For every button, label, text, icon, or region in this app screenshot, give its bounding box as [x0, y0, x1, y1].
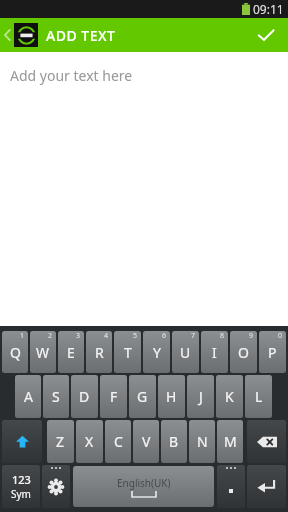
staticText: F: [110, 387, 118, 406]
button[interactable]: Q: [2, 331, 28, 373]
button[interactable]: X: [76, 420, 103, 463]
staticText: 4: [104, 331, 109, 341]
staticText: English(UK): [117, 476, 171, 490]
staticText: H: [166, 387, 177, 406]
staticText: 1: [20, 331, 25, 341]
staticText: Q: [10, 343, 21, 362]
staticText: 0: [278, 331, 283, 341]
staticText: 7: [191, 331, 196, 341]
staticText: 6: [162, 331, 167, 341]
button[interactable]: I: [201, 331, 228, 373]
staticText: V: [142, 432, 151, 451]
staticText: W: [36, 343, 50, 362]
button[interactable]: R: [86, 331, 112, 373]
staticText: O: [238, 343, 249, 362]
button[interactable]: W: [30, 331, 56, 373]
staticText: E: [67, 343, 75, 362]
button[interactable]: G: [129, 375, 156, 418]
button[interactable]: K: [216, 375, 243, 418]
staticText: J: [199, 387, 203, 406]
button[interactable]: V: [133, 420, 159, 463]
staticText: Add your text here: [10, 66, 133, 85]
button[interactable]: N: [189, 420, 215, 463]
button[interactable]: D: [71, 375, 98, 418]
button[interactable]: L: [245, 375, 272, 418]
staticText: P: [268, 343, 277, 362]
button[interactable]: Symbols: [2, 465, 40, 508]
staticText: S: [52, 387, 60, 406]
button[interactable]: O: [230, 331, 257, 373]
button[interactable]: Add your text here: [0, 52, 288, 326]
staticText: 8: [220, 331, 225, 341]
staticText: T: [124, 343, 132, 362]
button[interactable]: M: [217, 420, 243, 463]
button[interactable]: J: [187, 375, 214, 418]
button[interactable]: F: [100, 375, 127, 418]
staticText: N: [197, 432, 208, 451]
button[interactable]: Shift: [2, 420, 42, 463]
staticText: R: [95, 343, 104, 362]
staticText: D: [79, 387, 90, 406]
button[interactable]: Backspace: [247, 420, 286, 463]
staticText: B: [169, 432, 179, 451]
button[interactable]: Space: [73, 466, 214, 507]
button[interactable]: Y: [143, 331, 170, 373]
button[interactable]: P: [259, 331, 286, 373]
staticText: Sym: [11, 487, 31, 501]
staticText: 9: [249, 331, 254, 341]
button[interactable]: Settings: [42, 465, 70, 508]
staticText: 2: [48, 331, 53, 341]
staticText: U: [180, 343, 191, 362]
staticText: K: [225, 387, 234, 406]
button[interactable]: Navigate up: [0, 18, 116, 52]
staticText: 123: [12, 472, 31, 487]
staticText: A: [24, 387, 33, 406]
button[interactable]: A: [15, 375, 41, 418]
button[interactable]: E: [58, 331, 84, 373]
staticText: I: [212, 343, 217, 362]
staticText: ADD TEXT: [46, 26, 116, 45]
staticText: 5: [133, 331, 138, 341]
button[interactable]: C: [105, 420, 131, 463]
button[interactable]: Done: [244, 18, 288, 52]
button[interactable]: U: [172, 331, 199, 373]
button[interactable]: Period: [217, 465, 245, 508]
staticText: 09:11: [253, 1, 284, 17]
staticText: L: [255, 387, 263, 406]
staticText: Y: [153, 343, 161, 362]
button[interactable]: T: [114, 331, 141, 373]
staticText: G: [137, 387, 148, 406]
button[interactable]: Enter: [247, 465, 286, 508]
staticText: M: [224, 432, 237, 451]
button[interactable]: S: [43, 375, 69, 418]
staticText: C: [114, 432, 123, 451]
staticText: 3: [76, 331, 81, 341]
button[interactable]: H: [158, 375, 185, 418]
button[interactable]: Z: [47, 420, 74, 463]
staticText: X: [85, 432, 94, 451]
staticText: Z: [56, 432, 65, 451]
button[interactable]: B: [161, 420, 187, 463]
